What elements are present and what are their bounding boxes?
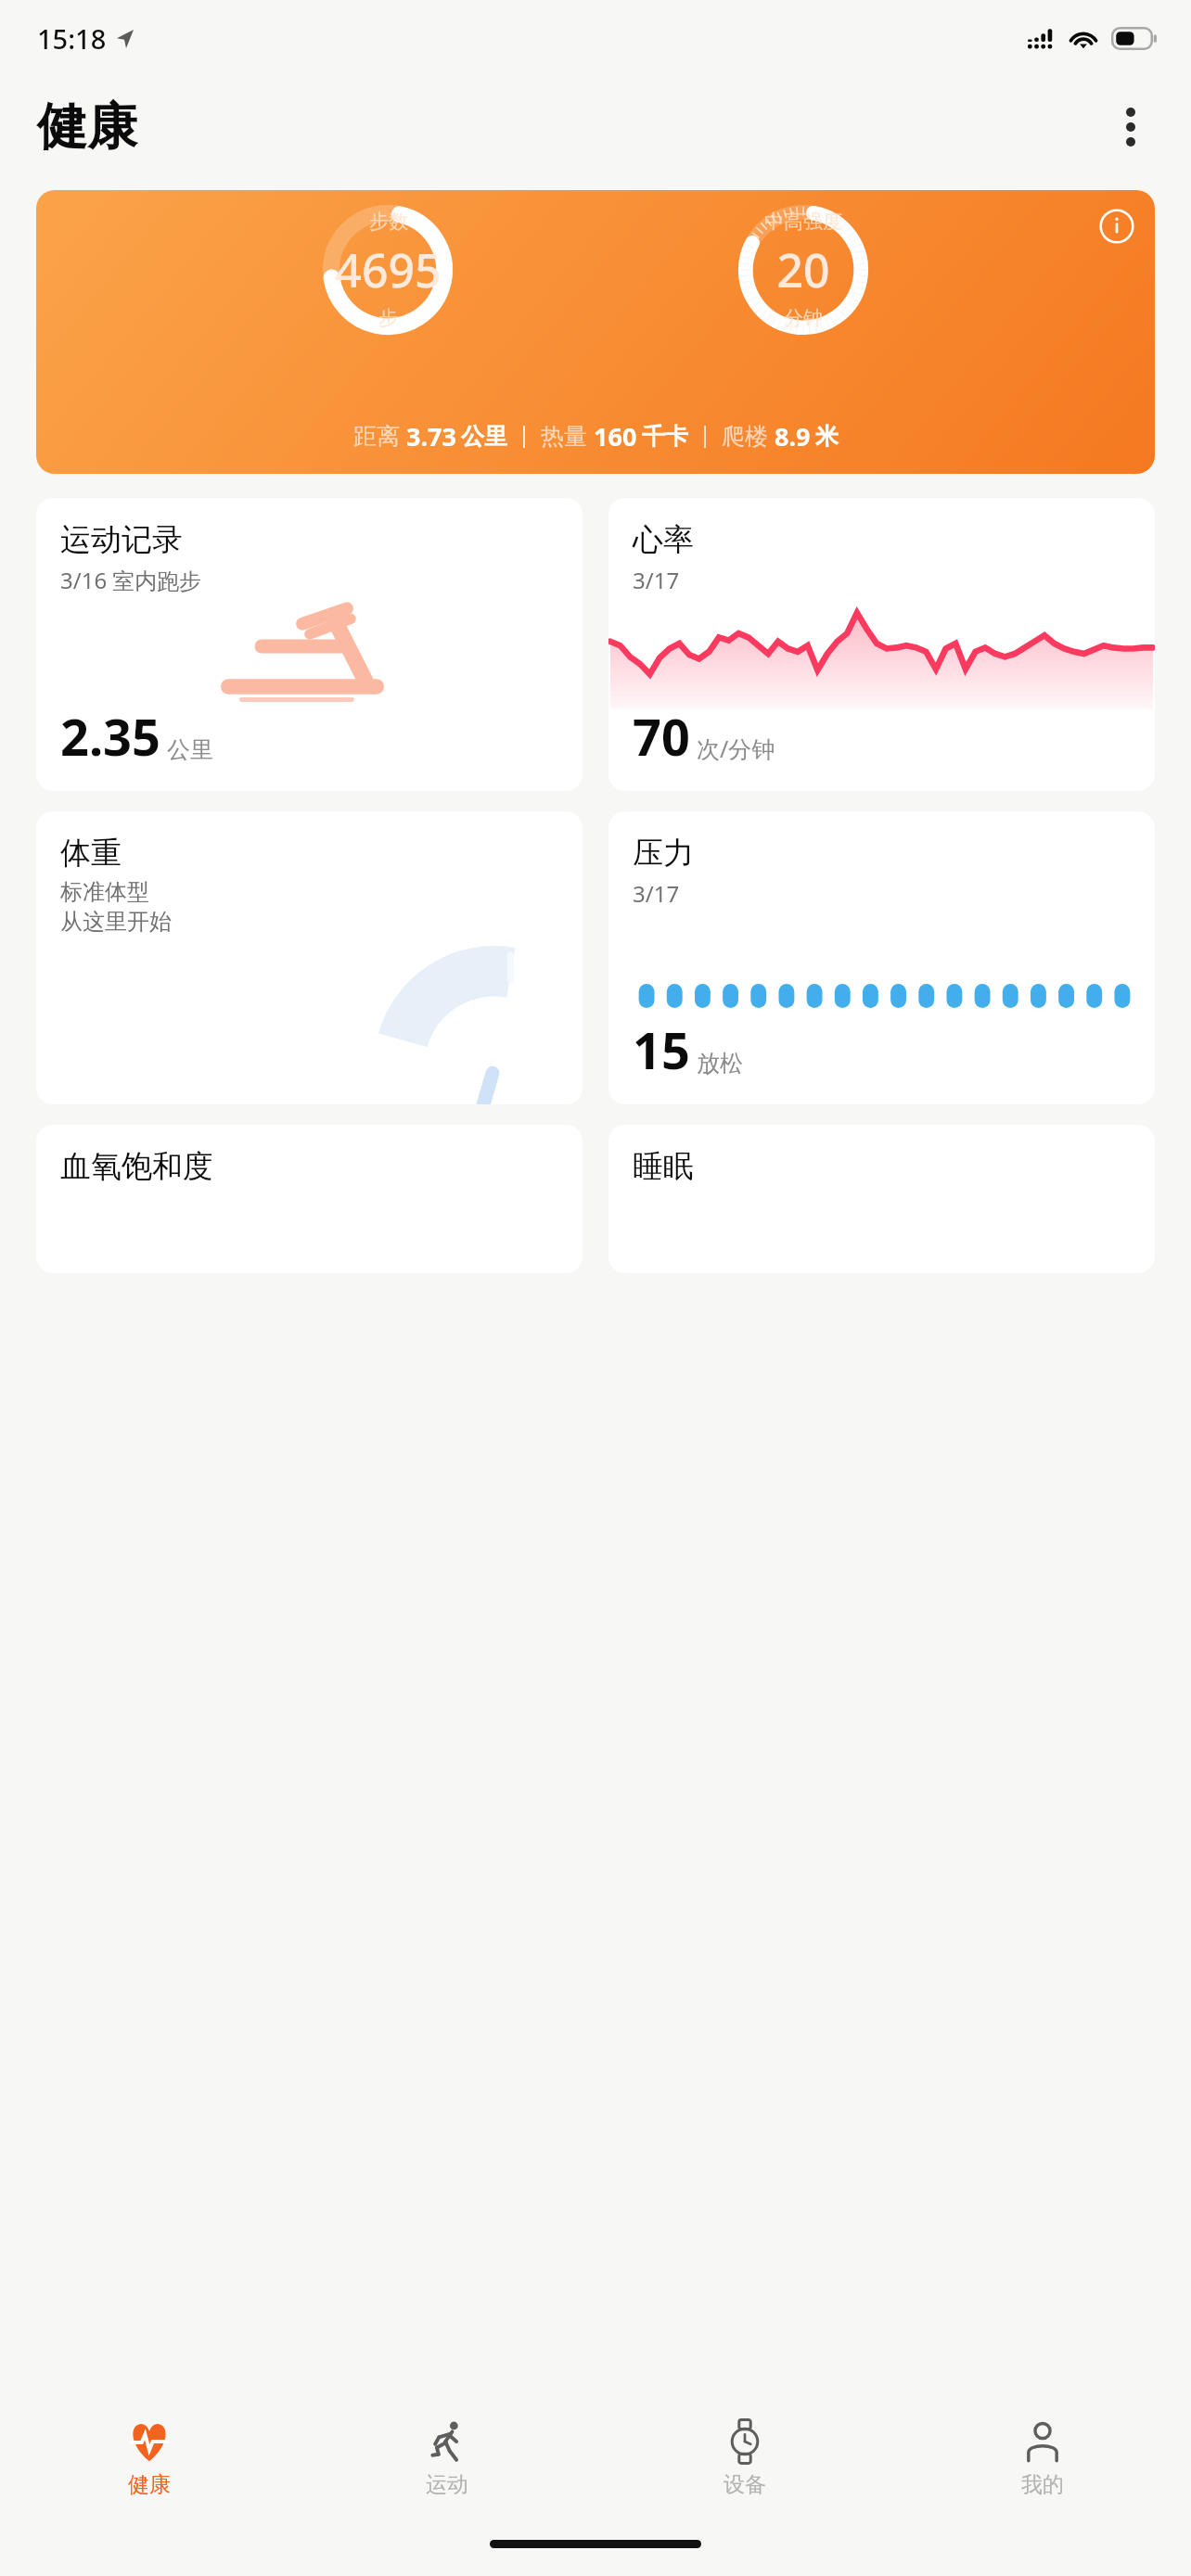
staticText: 血氧饱和度 [60, 1147, 213, 1186]
staticText: 15:18 [37, 20, 107, 57]
staticText: 步 [378, 306, 398, 330]
staticText: 2.35 [60, 702, 160, 771]
button[interactable]: 步数 [36, 190, 1155, 474]
button[interactable]: 运动记录 [36, 498, 583, 791]
staticText: 从这里开始 [60, 908, 172, 936]
staticText: 3/17 [633, 565, 680, 595]
staticText: 运动记录 [60, 520, 183, 559]
staticText: 健康 [128, 2471, 171, 2498]
staticText: 压力 [633, 834, 694, 873]
staticText: 千卡 [642, 422, 688, 451]
button[interactable]: 血氧饱和度 [36, 1125, 583, 1273]
button[interactable]: More options [1098, 95, 1163, 159]
staticText: 3/16 室内跑步 [60, 565, 202, 595]
staticText: 次/分钟 [697, 733, 775, 764]
staticText: 中高强度 [764, 210, 842, 234]
staticText: 距离 [353, 422, 400, 451]
staticText: 热量 [541, 422, 587, 451]
button[interactable]: 设备 [595, 2400, 893, 2519]
button[interactable]: 健康 [0, 2400, 298, 2519]
button[interactable]: 心率 [608, 498, 1155, 791]
staticText: 心率 [633, 520, 694, 559]
staticText: 公里 [167, 735, 213, 764]
staticText: 15 [633, 1015, 690, 1084]
button[interactable]: 睡眠 [608, 1125, 1155, 1273]
staticText: 分钟 [784, 306, 823, 330]
staticText: 米 [815, 422, 839, 451]
staticText: 我的 [1021, 2471, 1064, 2498]
staticText: 70 [633, 702, 690, 771]
staticText: 放松 [697, 1049, 743, 1078]
staticText: 运动 [426, 2471, 468, 2498]
staticText: 标准体型 [60, 878, 149, 906]
staticText: 健康 [37, 96, 137, 159]
staticText: 步数 [369, 210, 408, 234]
button[interactable]: 压力 [608, 811, 1155, 1104]
button[interactable]: 我的 [893, 2400, 1191, 2519]
staticText: 160 [594, 419, 637, 453]
staticText: 爬楼 [722, 422, 768, 451]
staticText: 20 [776, 238, 830, 301]
staticText: 3/17 [633, 878, 680, 909]
button[interactable]: 运动 [298, 2400, 595, 2519]
staticText: 设备 [724, 2471, 766, 2498]
staticText: 3.73 [406, 419, 456, 453]
staticText: 体重 [60, 834, 122, 873]
staticText: 睡眠 [633, 1147, 694, 1186]
button[interactable]: Info [1095, 205, 1138, 248]
button[interactable]: 体重 [36, 811, 583, 1104]
staticText: 公里 [461, 422, 507, 451]
staticText: 4695 [335, 238, 442, 301]
staticText: 8.9 [775, 419, 811, 453]
